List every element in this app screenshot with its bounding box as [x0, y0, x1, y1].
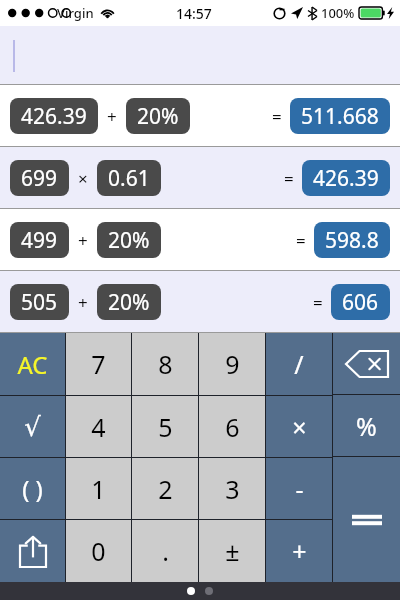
button[interactable]: / [266, 333, 332, 395]
button[interactable]: . [132, 520, 198, 582]
button[interactable]: 505 [10, 284, 69, 320]
button[interactable]: 3 [199, 458, 265, 519]
button[interactable]: 5 [132, 396, 198, 457]
button[interactable]: 0.61 [97, 160, 161, 196]
button[interactable]: √ [0, 396, 65, 457]
staticText: 0.61 [108, 164, 150, 193]
button[interactable]: 6 [199, 396, 265, 457]
button[interactable]: + [266, 520, 332, 582]
staticText: 9 [225, 347, 240, 381]
button[interactable]: 20% [97, 284, 161, 320]
button[interactable]: 2 [132, 458, 198, 519]
button[interactable]: ( ) [0, 458, 65, 519]
staticText: Virgin [57, 4, 94, 22]
staticText: + [107, 105, 117, 128]
staticText: 598.8 [325, 226, 379, 255]
button[interactable]: 426.39 [0, 85, 400, 147]
staticText: + [78, 291, 88, 314]
staticText: 0 [91, 534, 106, 568]
staticText: 499 [21, 226, 58, 255]
staticText: 699 [21, 164, 58, 193]
staticText: 2 [158, 472, 173, 506]
staticText: / [294, 347, 304, 381]
staticText: 426.39 [313, 164, 379, 193]
staticText: 505 [21, 288, 58, 317]
staticText: 14:57 [176, 4, 212, 23]
staticText: 511.668 [301, 102, 379, 131]
staticText: + [78, 229, 88, 252]
button[interactable]: 20% [97, 222, 161, 258]
button[interactable]: 699 [10, 160, 69, 196]
staticText: √ [24, 412, 41, 442]
staticText: 4 [91, 410, 106, 444]
button[interactable]: 699 [0, 147, 400, 209]
button[interactable]: 606 [331, 284, 390, 320]
button[interactable]: 499 [10, 222, 69, 258]
staticText: = [313, 291, 323, 314]
staticText: = [284, 167, 294, 190]
button[interactable]: 505 [0, 271, 400, 333]
staticText: - [295, 472, 304, 506]
staticText: 7 [91, 347, 106, 381]
button[interactable]: 9 [199, 333, 265, 395]
button[interactable]: 7 [66, 333, 131, 395]
staticText: 20% [108, 288, 150, 317]
button[interactable]: 4 [66, 396, 131, 457]
staticText: = [272, 105, 282, 128]
staticText: ( ) [22, 472, 43, 505]
button[interactable]: 8 [132, 333, 198, 395]
button[interactable]: % [333, 395, 400, 456]
button[interactable]: - [266, 458, 332, 519]
staticText: 8 [158, 347, 173, 381]
staticText: AC [17, 348, 48, 381]
staticText: . [162, 534, 169, 568]
staticText: 100% [321, 4, 355, 22]
staticText: × [292, 410, 307, 444]
button[interactable]: 1 [66, 458, 131, 519]
staticText: 1 [91, 472, 106, 506]
button[interactable]: Backspace [333, 333, 400, 394]
button[interactable]: 20% [126, 98, 190, 134]
button[interactable]: Equals [333, 457, 400, 582]
button[interactable]: 0 [66, 520, 131, 582]
staticText: × [78, 167, 88, 190]
button[interactable]: 426.39 [302, 160, 390, 196]
staticText: % [356, 409, 377, 443]
button[interactable]: Share [0, 520, 65, 582]
staticText: + [292, 534, 307, 568]
staticText: 3 [225, 472, 240, 506]
staticText: ± [225, 534, 240, 568]
button[interactable]: × [266, 396, 332, 457]
button[interactable]: 598.8 [314, 222, 390, 258]
staticText: 20% [137, 102, 179, 131]
staticText: 606 [342, 288, 379, 317]
button[interactable]: 499 [0, 209, 400, 271]
staticText: 5 [158, 410, 173, 444]
button[interactable]: AC [0, 333, 65, 395]
button[interactable]: ± [199, 520, 265, 582]
staticText: 426.39 [21, 102, 87, 131]
staticText: 20% [108, 226, 150, 255]
button[interactable]: 426.39 [10, 98, 98, 134]
staticText: = [296, 229, 306, 252]
staticText: 6 [225, 410, 240, 444]
button[interactable]: 511.668 [290, 98, 390, 134]
